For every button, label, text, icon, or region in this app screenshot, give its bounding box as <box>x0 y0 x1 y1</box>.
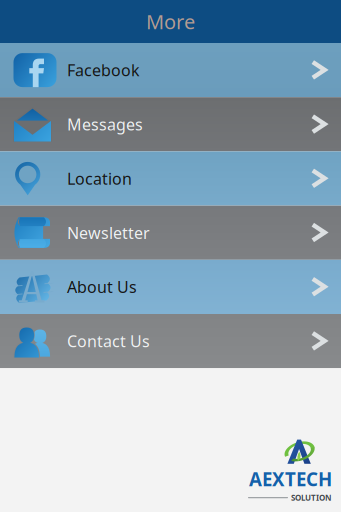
staticText: SOLUTION <box>291 492 332 503</box>
staticText: Contact Us <box>67 330 150 352</box>
button[interactable]: Messages <box>0 97 341 151</box>
staticText: Facebook <box>67 59 140 81</box>
button[interactable]: About Us <box>0 260 341 314</box>
staticText: Messages <box>67 114 143 135</box>
staticText: About Us <box>67 276 137 297</box>
button[interactable]: Contact Us <box>0 314 341 368</box>
button[interactable]: Facebook <box>0 43 341 97</box>
staticText: More <box>146 8 195 35</box>
button[interactable]: Location <box>0 151 341 206</box>
staticText: Newsletter <box>67 222 150 243</box>
staticText: AEXTECH <box>249 467 332 491</box>
staticText: Location <box>67 168 132 189</box>
button[interactable]: Newsletter <box>0 206 341 260</box>
